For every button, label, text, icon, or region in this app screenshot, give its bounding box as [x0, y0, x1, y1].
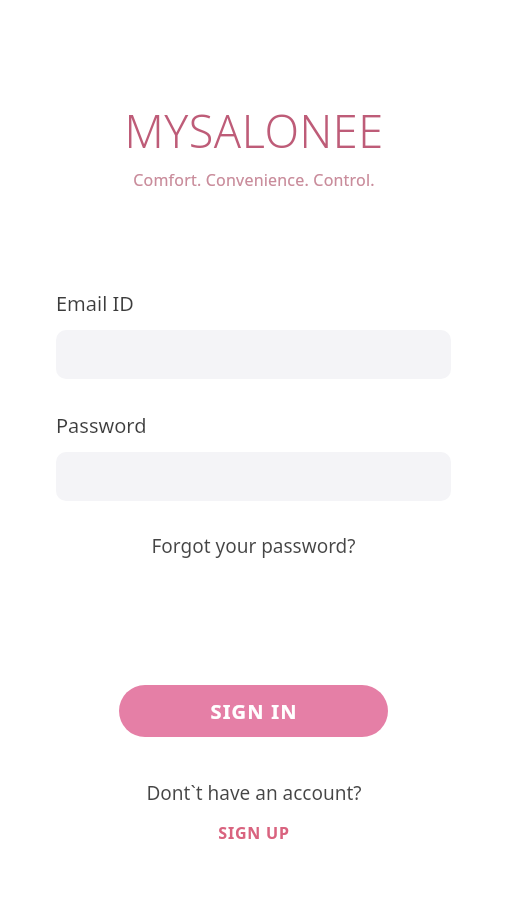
- staticText: Forgot your password?: [151, 533, 356, 559]
- button[interactable]: SIGN IN: [119, 685, 388, 737]
- button[interactable]: Sign up: [208, 818, 300, 848]
- staticText: SIGN UP: [218, 822, 290, 844]
- staticText: Password: [56, 412, 147, 439]
- staticText: Email ID: [56, 290, 134, 317]
- staticText: SIGN IN: [210, 698, 298, 725]
- staticText: Dont`t have an account?: [146, 780, 362, 806]
- staticText: Comfort. Convenience. Control.: [133, 169, 375, 191]
- staticText: MYSALONEE: [124, 100, 384, 161]
- button[interactable]: Forgot your password?: [143, 529, 364, 563]
